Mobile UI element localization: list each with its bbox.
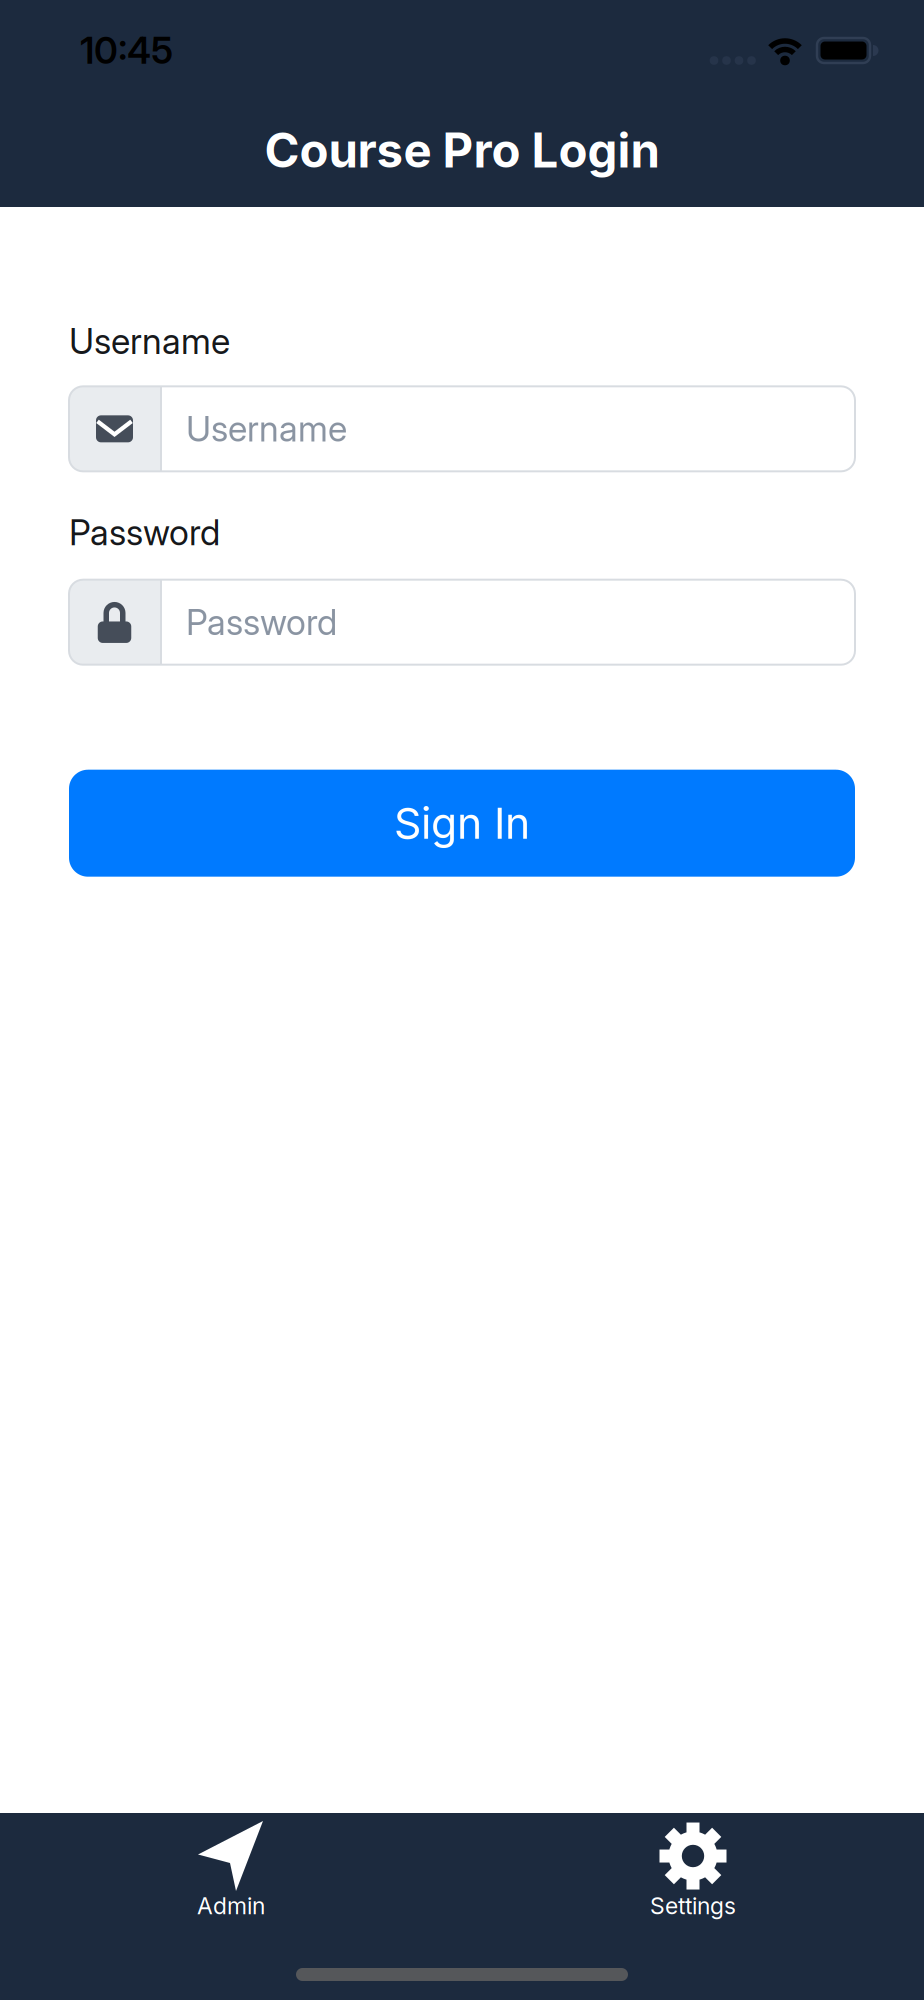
staticText: Username — [69, 320, 230, 362]
button[interactable]: Password — [69, 580, 855, 665]
staticText: Username — [186, 408, 347, 450]
staticText: Password — [69, 511, 220, 554]
button[interactable]: Admin — [0, 1820, 462, 1920]
button[interactable]: Settings — [462, 1820, 924, 1920]
staticText: Settings — [650, 1892, 736, 1920]
button[interactable]: Username — [69, 386, 855, 471]
staticText: Course Pro Login — [264, 122, 659, 179]
staticText: Sign In — [394, 797, 530, 849]
staticText: Password — [186, 601, 337, 643]
staticText: Admin — [197, 1892, 265, 1920]
staticText: 10:45 — [80, 28, 173, 73]
button[interactable]: Sign In — [69, 770, 855, 877]
